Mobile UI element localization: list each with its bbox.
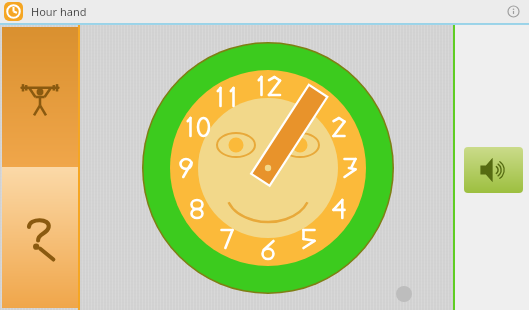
button[interactable]: Practice: [2, 27, 78, 167]
button[interactable]: App icon, navigate up: [4, 2, 23, 21]
button[interactable]: Info: [502, 0, 525, 23]
button[interactable]: Play sound: [464, 147, 523, 193]
button[interactable]: Quiz: [2, 167, 78, 308]
staticText: Hour hand: [31, 4, 87, 19]
